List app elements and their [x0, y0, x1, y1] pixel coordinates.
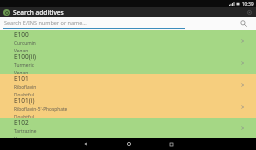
staticText: Vegan	[14, 70, 29, 74]
staticText: E101	[14, 74, 29, 83]
button[interactable]: Recent apps	[166, 139, 176, 149]
staticText: E100(ii)	[14, 52, 37, 61]
staticText: Vegan	[14, 136, 29, 138]
staticText: Turmeric	[14, 62, 35, 69]
button[interactable]: E102	[0, 118, 256, 138]
button[interactable]: E100(ii)	[0, 52, 256, 74]
staticText: Vegan	[14, 48, 29, 52]
button[interactable]: E100	[0, 30, 256, 52]
button[interactable]: More options	[245, 8, 253, 16]
button[interactable]: E101(i)	[0, 96, 256, 118]
button[interactable]: Back	[81, 139, 91, 149]
staticText: Tartrazine	[14, 128, 37, 135]
button[interactable]: Home	[124, 139, 134, 149]
button[interactable]: Search E/INS number or name...	[0, 17, 256, 30]
button[interactable]: E101	[0, 74, 256, 96]
staticText: Riboflavin-5'-Phosphate	[14, 106, 68, 113]
staticText: Riboflavin	[14, 84, 37, 91]
staticText: E102	[14, 118, 29, 127]
staticText: Doubtful	[14, 114, 34, 118]
staticText: Search additives	[13, 8, 64, 17]
staticText: 10:39	[242, 1, 254, 7]
staticText: E100	[14, 30, 29, 39]
staticText: Search E/INS number or name...	[4, 19, 87, 26]
staticText: Doubtful	[14, 92, 34, 96]
staticText: Curcumin	[14, 40, 36, 47]
button[interactable]: Search	[238, 18, 248, 28]
staticText: E101(i)	[14, 96, 35, 105]
